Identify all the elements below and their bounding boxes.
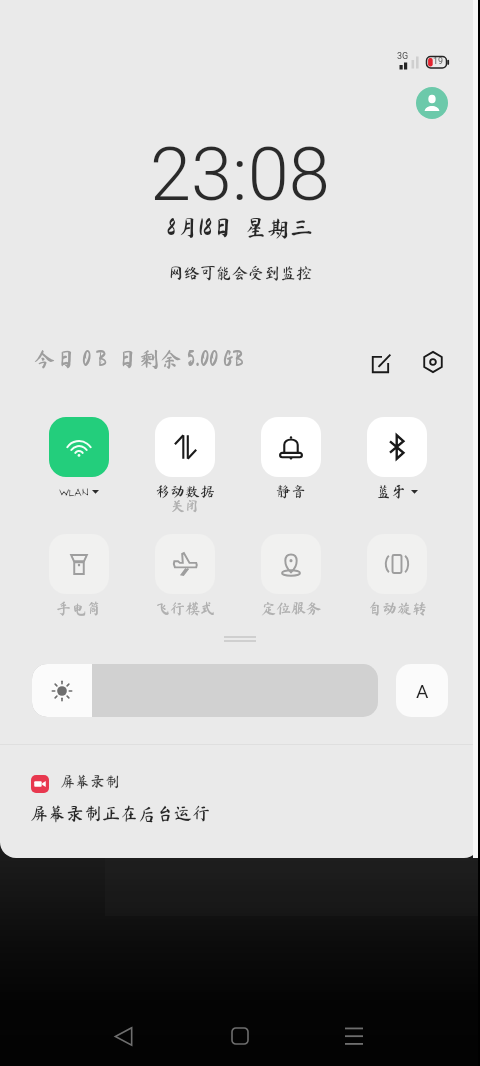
staticText: 飞行模式: [155, 601, 216, 616]
button[interactable]: Home: [216, 1012, 264, 1060]
staticText: 今日 0 B 日剩余 5.00 GB: [34, 349, 245, 370]
staticText: 静音: [276, 484, 307, 499]
staticText: 屏幕录制正在后台运行: [30, 804, 210, 822]
button[interactable]: 屏幕录制: [0, 762, 480, 842]
staticText: 19: [433, 56, 444, 67]
button[interactable]: 手电筒: [29, 534, 129, 616]
button[interactable]: Recent apps: [330, 1012, 378, 1060]
staticText: 8月18日 星期三: [167, 216, 313, 239]
staticText: 移动数据: [155, 484, 216, 499]
staticText: 网络可能会受到监控: [168, 265, 313, 281]
staticText: 手电筒: [56, 601, 102, 616]
button[interactable]: 自动旋转: [347, 534, 447, 616]
button[interactable]: User account: [416, 87, 448, 119]
button[interactable]: WLAN: [29, 417, 129, 499]
button[interactable]: 蓝牙: [347, 417, 447, 499]
staticText: 屏幕录制: [60, 774, 121, 789]
staticText: 23:08: [150, 131, 330, 218]
staticText: 3G: [397, 51, 409, 62]
button[interactable]: Edit quick settings: [364, 345, 400, 381]
button[interactable]: Brightness slider: [32, 664, 378, 717]
staticText: 自动旋转: [367, 601, 428, 616]
button[interactable]: Back: [99, 1012, 147, 1060]
button[interactable]: 移动数据: [135, 417, 235, 513]
staticText: 蓝牙: [376, 484, 407, 499]
button[interactable]: Settings: [415, 344, 451, 380]
button[interactable]: 静音: [241, 417, 341, 499]
staticText: A: [416, 680, 429, 702]
staticText: 定位服务: [261, 601, 322, 616]
button[interactable]: Font size: [396, 664, 448, 717]
staticText: WLAN: [59, 484, 88, 499]
button[interactable]: 飞行模式: [135, 534, 235, 616]
button[interactable]: 定位服务: [241, 534, 341, 616]
staticText: 关闭: [171, 499, 199, 513]
